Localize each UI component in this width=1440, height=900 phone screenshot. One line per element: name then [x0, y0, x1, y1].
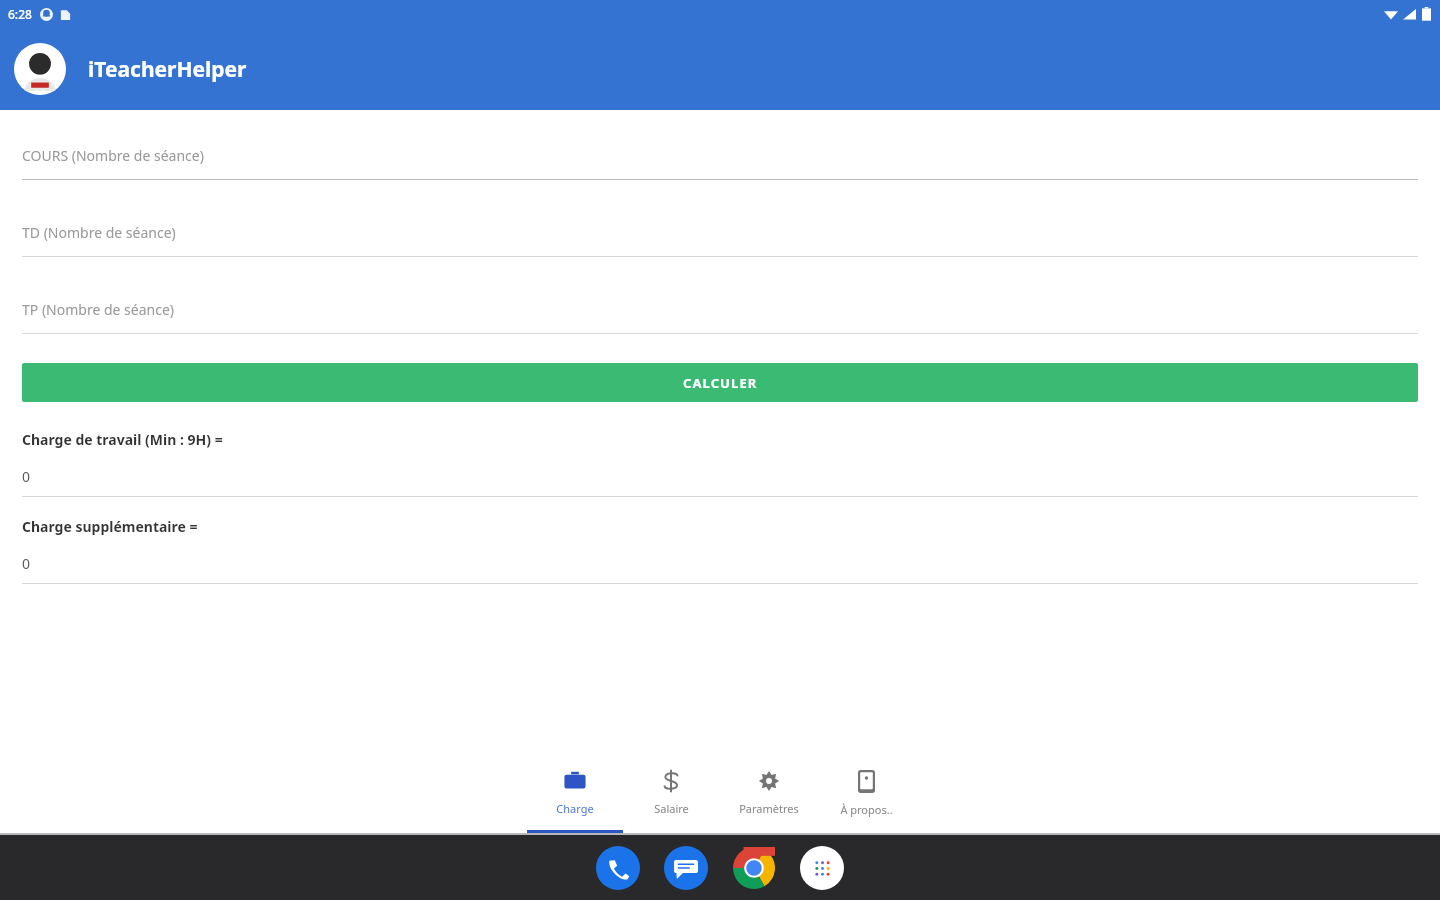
staticText: COURS (Nombre de séance)	[22, 146, 204, 165]
button[interactable]: TD (Nombre de séance)	[22, 223, 1418, 257]
button[interactable]: Phone	[596, 846, 640, 890]
button[interactable]: Charge	[527, 761, 623, 833]
staticText: Salaire	[654, 801, 689, 816]
button[interactable]: Chrome	[732, 846, 776, 890]
staticText: 0	[22, 554, 31, 573]
staticText: Charge supplémentaire =	[22, 517, 198, 536]
staticText: Charge	[556, 801, 594, 816]
staticText: Paramètres	[739, 801, 799, 816]
staticText: TD (Nombre de séance)	[22, 223, 176, 242]
staticText: iTeacherHelper	[88, 55, 247, 84]
staticText: TP (Nombre de séance)	[22, 300, 175, 319]
button[interactable]: À propos..	[818, 761, 914, 833]
button[interactable]: All apps	[800, 846, 844, 890]
button[interactable]: Messages	[664, 846, 708, 890]
staticText: À propos..	[840, 802, 893, 817]
staticText: 0	[22, 467, 31, 486]
button[interactable]: Profile	[14, 43, 66, 95]
staticText: Charge de travail (Min : 9H) =	[22, 430, 223, 449]
button[interactable]: TP (Nombre de séance)	[22, 300, 1418, 334]
staticText: CALCULER	[683, 374, 758, 392]
button[interactable]: Paramètres	[719, 761, 818, 833]
button[interactable]: Salaire	[623, 761, 719, 833]
button[interactable]: CALCULER	[22, 363, 1418, 402]
button[interactable]: COURS (Nombre de séance)	[22, 146, 1418, 180]
staticText: 6:28	[8, 6, 32, 22]
